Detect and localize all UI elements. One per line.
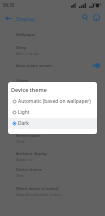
button[interactable]: Wallpaper bbox=[0, 27, 105, 42]
staticText: Dark bbox=[18, 120, 29, 127]
staticText: Ambient display bbox=[16, 151, 47, 157]
staticText: Screen saver bbox=[16, 133, 41, 139]
button[interactable]: Light bbox=[8, 107, 97, 118]
staticText: Colors bbox=[16, 78, 29, 84]
staticText: Default bbox=[16, 100, 28, 105]
staticText: Display size bbox=[16, 111, 39, 117]
button[interactable]: Dark bbox=[8, 118, 97, 129]
button[interactable]: Font size bbox=[0, 90, 105, 107]
staticText: Always on bbox=[16, 157, 32, 162]
staticText: Automatic (based on wallpaper) bbox=[18, 98, 91, 105]
staticText: Device theme bbox=[11, 86, 47, 93]
staticText: Sleep bbox=[16, 45, 27, 51]
staticText: Light bbox=[18, 109, 30, 116]
staticText: Device theme bbox=[16, 167, 43, 173]
button[interactable]: Ambient display bbox=[0, 147, 105, 164]
button[interactable]: Back bbox=[1, 11, 15, 25]
button[interactable]: Colors bbox=[0, 73, 105, 88]
button[interactable]: Auto-rotate screen bbox=[0, 58, 105, 73]
button[interactable]: Device theme bbox=[0, 163, 105, 180]
button[interactable]: Display size bbox=[0, 107, 105, 124]
staticText: Auto-rotate screen bbox=[16, 63, 52, 69]
staticText: Default bbox=[16, 117, 28, 122]
button[interactable]: Search bbox=[79, 11, 91, 23]
staticText: When device is locked bbox=[16, 186, 59, 192]
staticText: Font size bbox=[16, 94, 33, 100]
staticText: Dark bbox=[16, 173, 24, 178]
staticText: Display bbox=[16, 15, 35, 22]
staticText: After 1 minute bbox=[16, 51, 39, 56]
staticText: Show all notification content bbox=[16, 192, 62, 197]
button[interactable]: Automatic (based on wallpaper) bbox=[8, 96, 97, 107]
button[interactable]: Screen saver bbox=[0, 129, 105, 146]
button[interactable]: When device is locked bbox=[0, 182, 105, 199]
button[interactable]: Help bbox=[90, 11, 102, 23]
staticText: 09:30 bbox=[3, 2, 15, 8]
staticText: 100% bbox=[92, 2, 102, 7]
staticText: Clock bbox=[16, 139, 25, 144]
staticText: Wallpaper bbox=[16, 32, 36, 38]
